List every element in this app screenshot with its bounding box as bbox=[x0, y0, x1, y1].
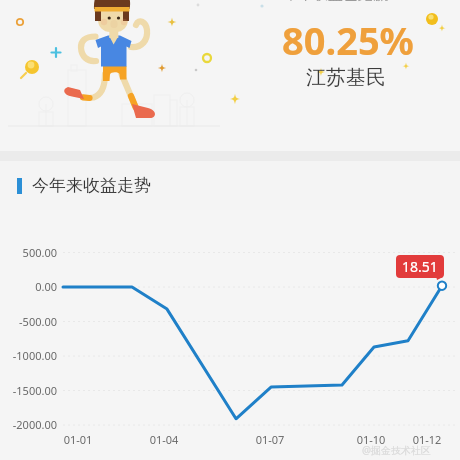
staticText: -2000.00 bbox=[0, 417, 57, 432]
staticText: -500.00 bbox=[0, 314, 57, 329]
staticText: 01-12 bbox=[397, 432, 457, 447]
button[interactable]: 18.51 bbox=[396, 255, 444, 278]
staticText: 江苏基民 bbox=[306, 65, 386, 90]
staticText: -1000.00 bbox=[0, 348, 57, 363]
staticText: 01-10 bbox=[341, 432, 401, 447]
staticText: 01-04 bbox=[134, 432, 194, 447]
staticText: -1500.00 bbox=[0, 383, 57, 398]
staticText: 80.25% bbox=[282, 14, 414, 66]
staticText: @掘金技术社区 bbox=[362, 443, 431, 457]
staticText: 01-07 bbox=[240, 432, 300, 447]
staticText: 今年来收益走势 bbox=[32, 175, 151, 196]
staticText: 01-01 bbox=[48, 432, 108, 447]
staticText: 500.00 bbox=[0, 245, 57, 260]
staticText: 18.51 bbox=[402, 257, 438, 276]
staticText: 今年收益已跑赢 bbox=[283, 0, 388, 4]
button[interactable]: 今年来收益走势 bbox=[0, 161, 460, 210]
staticText: 0.00 bbox=[0, 279, 57, 294]
